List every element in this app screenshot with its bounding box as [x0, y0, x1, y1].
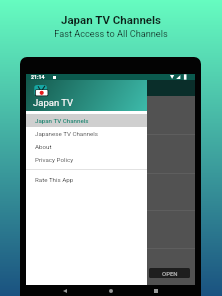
staticText: Privacy Policy	[35, 156, 74, 163]
staticText: Japanese TV Channels	[35, 130, 99, 137]
staticText: Fast Access to All Channels	[54, 28, 168, 39]
staticText: Rate This App	[35, 176, 74, 183]
staticText: About	[35, 143, 52, 150]
button[interactable]: Back	[59, 285, 71, 296]
button[interactable]: Rate This App	[26, 173, 147, 186]
button[interactable]: Japanese TV Channels	[26, 127, 147, 140]
button[interactable]: Japan TV Channels	[26, 114, 147, 127]
staticText: Japan TV	[33, 97, 74, 108]
button[interactable]: Privacy Policy	[26, 153, 147, 166]
button[interactable]: OPEN	[149, 268, 190, 278]
button[interactable]: About	[26, 140, 147, 153]
button[interactable]: Recents	[150, 285, 162, 296]
staticText: Japan TV Channels	[35, 117, 89, 124]
button[interactable]: Home	[105, 285, 117, 296]
staticText: OPEN	[162, 270, 178, 277]
staticText: Japan TV Channels	[61, 13, 161, 26]
staticText: 21:14	[31, 74, 45, 80]
